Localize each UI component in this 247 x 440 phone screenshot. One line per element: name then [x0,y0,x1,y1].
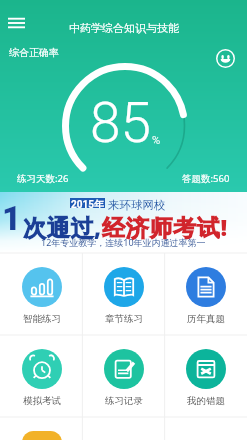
button[interactable]: 练习记录 [83,335,165,417]
staticText: % [152,134,161,147]
staticText: 章节练习 [105,313,143,325]
staticText: 练习记录 [105,395,143,407]
button[interactable]: 智能练习 [0,253,83,335]
staticText: 历年真题 [187,313,225,325]
staticText: 智能练习 [23,313,61,325]
staticText: 综合正确率 [9,46,59,59]
staticText: 2015年 [71,198,104,208]
staticText: 85 [90,91,152,155]
staticText: 来环球网校 [108,198,166,212]
staticText: 我的错题 [187,395,225,407]
button[interactable]: 章节练习 [83,253,165,335]
button[interactable]: 我的错题 [165,335,247,417]
staticText: 练习天数:26 [17,172,69,185]
button[interactable]: 历年真题 [165,253,247,335]
staticText: 1 [2,199,22,238]
staticText: 中药学综合知识与技能 [69,21,179,35]
button[interactable]: Mood [216,49,235,68]
staticText: 经济师考试! [102,211,228,242]
staticText: 12年专业教学，连续10年业内通过率第一 [41,236,206,248]
staticText: 次通过, [23,211,102,242]
button[interactable] [0,417,83,440]
button[interactable]: 模拟考试 [0,335,83,417]
staticText: 模拟考试 [23,395,61,407]
staticText: 答题数:560 [182,172,230,185]
button[interactable]: Menu [2,11,31,36]
